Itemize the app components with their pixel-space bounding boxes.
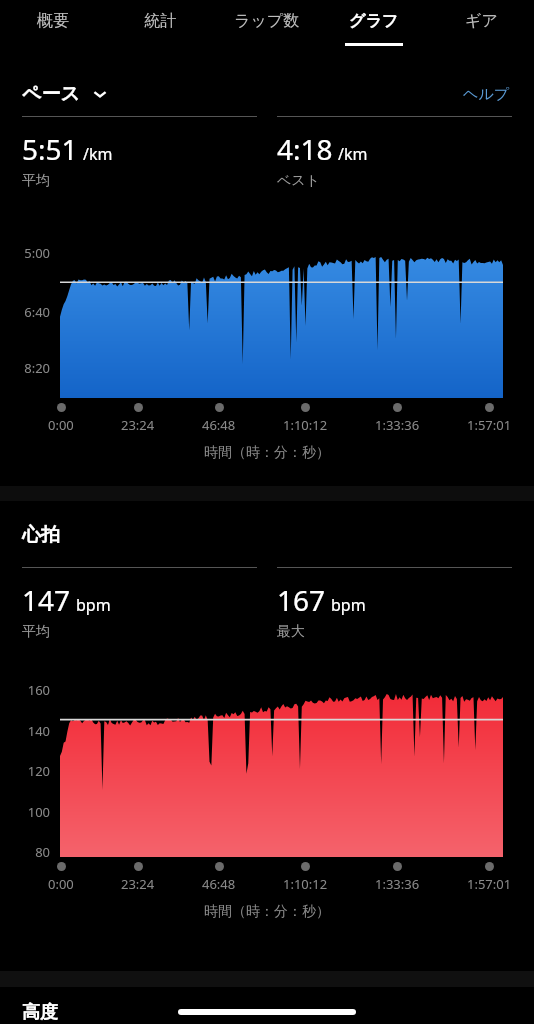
staticText: 46:48 <box>202 875 236 893</box>
staticText: 0:00 <box>48 875 74 893</box>
staticText: 4:18 <box>277 130 333 168</box>
staticText: ヘルプ <box>463 85 510 104</box>
staticText: 平均 <box>22 623 50 641</box>
button[interactable]: ラップ数 <box>213 0 320 56</box>
staticText: ラップ数 <box>234 11 300 31</box>
staticText: 1:33:36 <box>375 875 420 893</box>
staticText: グラフ <box>349 11 399 31</box>
staticText: 1:57:01 <box>467 416 512 434</box>
staticText: 概要 <box>37 11 69 31</box>
button[interactable]: グラフ <box>320 0 427 56</box>
button[interactable]: ギア <box>427 0 534 56</box>
staticText: 時間（時：分：秒） <box>0 444 534 462</box>
staticText: 6:40 <box>0 303 50 321</box>
staticText: 8:20 <box>0 359 50 377</box>
staticText: 46:48 <box>202 416 236 434</box>
staticText: 23:24 <box>121 416 155 434</box>
staticText: 1:57:01 <box>467 875 512 893</box>
staticText: 80 <box>0 843 50 861</box>
staticText: 最大 <box>277 623 305 641</box>
staticText: bpm <box>331 594 366 616</box>
staticText: 1:33:36 <box>375 416 420 434</box>
staticText: 147 <box>22 581 71 619</box>
staticText: 167 <box>277 581 326 619</box>
staticText: 平均 <box>22 172 50 190</box>
staticText: 140 <box>0 722 50 740</box>
staticText: 160 <box>0 681 50 699</box>
button[interactable]: ヘルプ <box>461 79 512 110</box>
staticText: 23:24 <box>121 875 155 893</box>
staticText: /km <box>338 143 368 165</box>
staticText: 5:51 <box>22 130 78 168</box>
staticText: 統計 <box>144 11 176 31</box>
staticText: 5:00 <box>0 244 50 262</box>
staticText: 0:00 <box>48 416 74 434</box>
staticText: 時間（時：分：秒） <box>0 903 534 921</box>
staticText: 100 <box>0 803 50 821</box>
button[interactable]: 概要 <box>0 0 106 56</box>
staticText: ベスト <box>277 172 320 190</box>
staticText: 心拍 <box>22 523 60 547</box>
staticText: ペース <box>22 82 80 106</box>
staticText: /km <box>83 143 113 165</box>
button[interactable]: ペース <box>22 82 108 106</box>
staticText: 1:10:12 <box>283 416 328 434</box>
button[interactable]: 統計 <box>106 0 213 56</box>
staticText: 1:10:12 <box>283 875 328 893</box>
staticText: ギア <box>465 11 498 31</box>
staticText: 高度 <box>22 1001 58 1024</box>
staticText: 120 <box>0 762 50 780</box>
staticText: bpm <box>76 594 111 616</box>
